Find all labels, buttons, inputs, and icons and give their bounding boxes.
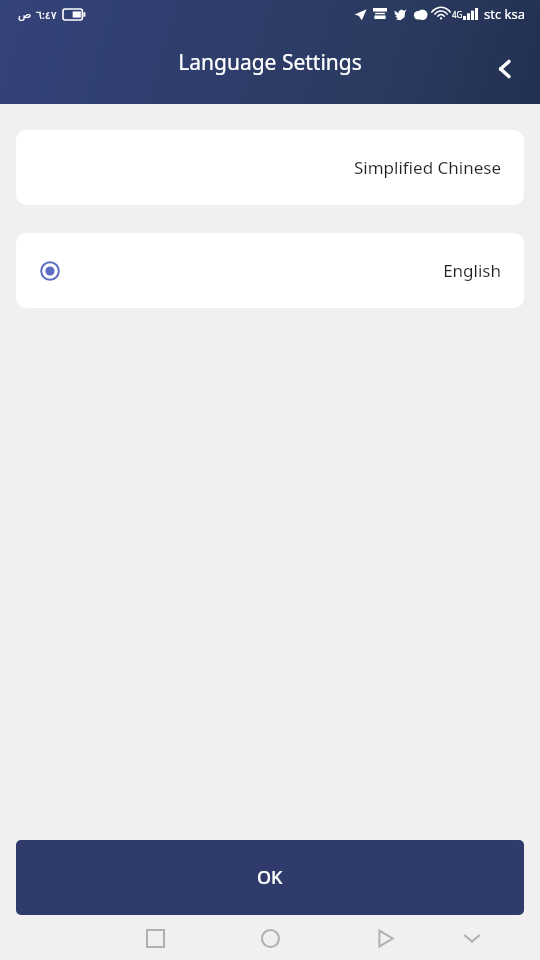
button[interactable]: Home (248, 916, 292, 960)
button[interactable]: English (16, 233, 524, 308)
staticText: English (443, 259, 501, 282)
button[interactable]: Back (482, 46, 528, 92)
staticText: Simplified Chinese (354, 156, 501, 179)
button[interactable]: Recents (133, 916, 177, 960)
staticText: ٦:٤٧ (36, 7, 57, 22)
staticText: OK (257, 865, 283, 890)
staticText: ص (18, 8, 32, 21)
staticText: Language Settings (0, 48, 540, 77)
staticText: stc ksa (484, 5, 526, 23)
button[interactable]: Simplified Chinese (16, 130, 524, 205)
button[interactable]: Back (363, 916, 407, 960)
button[interactable]: Hide (450, 916, 494, 960)
button[interactable]: OK (16, 840, 524, 915)
staticText: 4G (452, 9, 463, 20)
